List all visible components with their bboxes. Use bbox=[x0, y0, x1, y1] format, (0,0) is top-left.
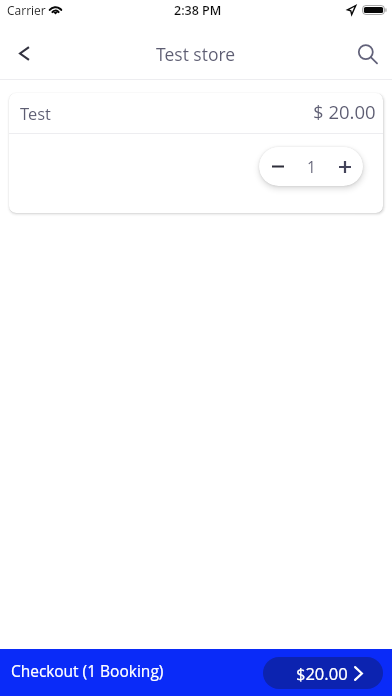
staticText: Test bbox=[20, 102, 51, 124]
staticText: Checkout (1 Booking) bbox=[11, 660, 164, 681]
button[interactable]: Back bbox=[4, 33, 44, 73]
staticText: Test store bbox=[156, 42, 236, 66]
button[interactable]: $20.00 bbox=[263, 657, 383, 689]
button[interactable]: Increase quantity bbox=[327, 147, 363, 186]
button[interactable]: Decrease quantity bbox=[259, 147, 296, 186]
button[interactable]: Search bbox=[347, 34, 387, 74]
button[interactable]: Checkout (1 Booking) bbox=[0, 649, 392, 696]
staticText: $ 20.00 bbox=[313, 99, 376, 124]
staticText: 2:38 PM bbox=[174, 2, 222, 19]
staticText: Carrier bbox=[7, 2, 46, 18]
staticText: $20.00 bbox=[296, 662, 348, 684]
staticText: 1 bbox=[296, 156, 327, 177]
